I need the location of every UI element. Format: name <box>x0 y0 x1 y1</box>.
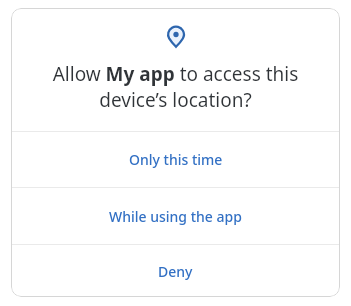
staticText: Allow My app to access this device’s loc… <box>11 61 340 113</box>
button[interactable]: Deny <box>11 245 340 297</box>
staticText: Only this time <box>129 150 223 169</box>
staticText: Deny <box>158 262 193 281</box>
staticText: While using the app <box>109 207 242 226</box>
button[interactable]: While using the app <box>11 188 340 244</box>
button[interactable]: Only this time <box>11 132 340 187</box>
